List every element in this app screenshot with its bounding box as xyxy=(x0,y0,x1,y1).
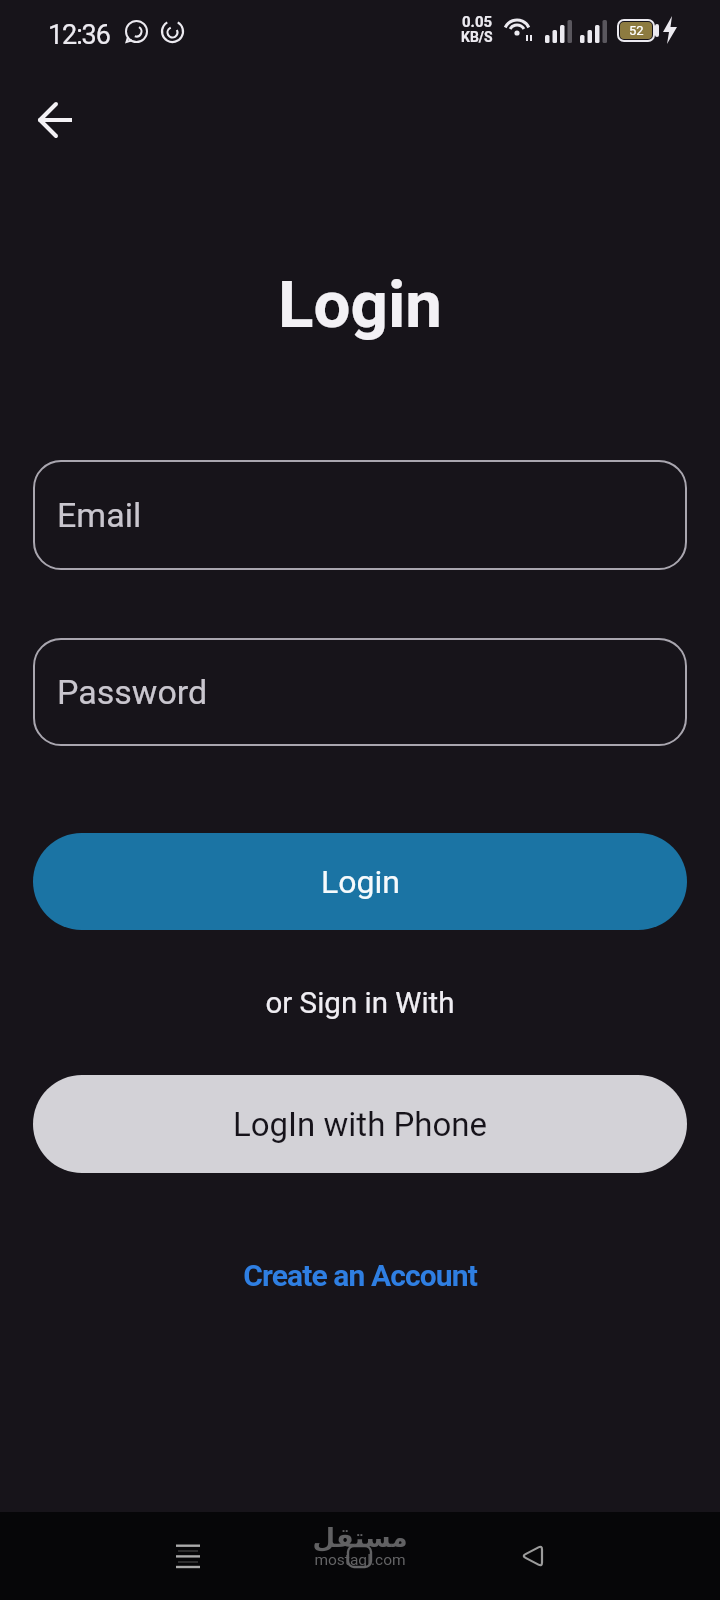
button[interactable] xyxy=(28,96,84,144)
staticText: Password xyxy=(57,672,208,712)
staticText: Login xyxy=(321,863,400,901)
staticText: Login xyxy=(0,266,720,343)
staticText: mostaql.com xyxy=(0,1551,720,1569)
button[interactable]: Create an Account xyxy=(0,1258,720,1293)
staticText: Create an Account xyxy=(243,1258,477,1293)
button[interactable] xyxy=(152,1520,224,1592)
button[interactable]: LogIn with Phone xyxy=(33,1075,687,1173)
staticText: 52 xyxy=(629,23,644,38)
staticText: 12:36 xyxy=(48,19,110,51)
staticText: مستقل xyxy=(0,1523,720,1553)
button[interactable]: Login xyxy=(33,833,687,930)
button[interactable]: Email xyxy=(33,460,687,570)
staticText: KB/S xyxy=(461,29,493,45)
staticText: Email xyxy=(57,495,142,535)
staticText: or Sign in With xyxy=(0,986,720,1021)
staticText: LogIn with Phone xyxy=(233,1105,488,1144)
button[interactable]: Password xyxy=(33,638,687,746)
button[interactable] xyxy=(496,1520,568,1592)
staticText: 0.05 xyxy=(462,13,493,31)
